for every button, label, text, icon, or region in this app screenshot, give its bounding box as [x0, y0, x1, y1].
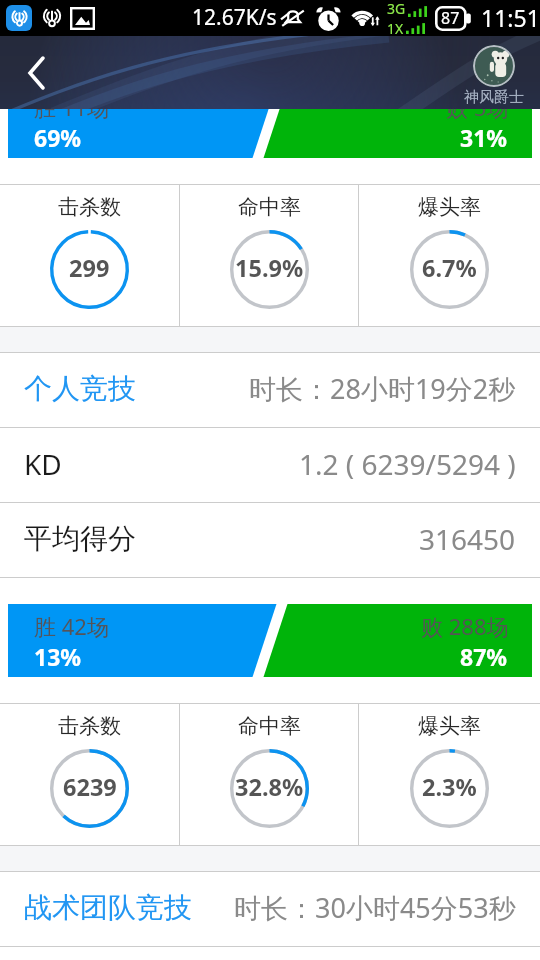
- staticText: 6239: [63, 771, 117, 803]
- staticText: 316450: [419, 520, 516, 558]
- staticText: 31%: [460, 122, 508, 153]
- staticText: 87: [441, 7, 460, 29]
- staticText: 时长：28小时19分2秒: [249, 370, 516, 407]
- staticText: 1.2 ( 6239/5294 ): [299, 445, 516, 483]
- button[interactable]: 命中率: [180, 185, 358, 326]
- staticText: KD: [24, 445, 62, 483]
- staticText: 2.3%: [422, 771, 477, 803]
- button[interactable]: 爆头率: [359, 704, 540, 845]
- staticText: 平均得分: [24, 521, 136, 556]
- staticText: 命中率: [238, 713, 301, 739]
- staticText: 13%: [34, 641, 82, 672]
- button[interactable]: 个人竞技: [0, 353, 540, 428]
- button[interactable]: 神风爵士: [464, 45, 524, 107]
- button[interactable]: 命中率: [180, 704, 358, 845]
- staticText: 败 5场: [446, 92, 509, 122]
- button[interactable]: 胜 11场: [8, 85, 532, 158]
- staticText: 3G: [387, 0, 406, 18]
- staticText: 87%: [460, 641, 508, 672]
- staticText: 11:51: [481, 2, 540, 33]
- staticText: 败 288场: [421, 611, 509, 641]
- staticText: 32.8%: [235, 771, 304, 803]
- button[interactable]: 胜 42场: [8, 604, 532, 677]
- button[interactable]: 爆头率: [359, 185, 540, 326]
- button[interactable]: 战术团队竞技: [0, 872, 540, 947]
- staticText: 神风爵士: [464, 88, 524, 107]
- staticText: 爆头率: [418, 713, 481, 739]
- staticText: 15.9%: [235, 252, 304, 284]
- staticText: 个人竞技: [24, 371, 136, 406]
- button[interactable]: 平均得分: [0, 503, 540, 578]
- staticText: 爆头率: [418, 194, 481, 220]
- staticText: 命中率: [238, 194, 301, 220]
- staticText: 时长：30小时45分53秒: [234, 889, 516, 926]
- staticText: 击杀数: [58, 713, 121, 739]
- button[interactable]: Back: [8, 45, 64, 101]
- staticText: 胜 42场: [34, 611, 109, 641]
- staticText: 击杀数: [58, 194, 121, 220]
- staticText: 69%: [34, 122, 82, 153]
- button[interactable]: 击杀数: [0, 704, 179, 845]
- button[interactable]: KD: [0, 428, 540, 503]
- button[interactable]: 击杀数: [0, 185, 179, 326]
- staticText: 胜 11场: [34, 92, 109, 122]
- staticText: 1X: [387, 19, 404, 35]
- staticText: 战术团队竞技: [24, 890, 192, 925]
- staticText: 299: [69, 252, 110, 284]
- staticText: 12.67K/s: [192, 3, 277, 32]
- staticText: 6.7%: [422, 252, 477, 284]
